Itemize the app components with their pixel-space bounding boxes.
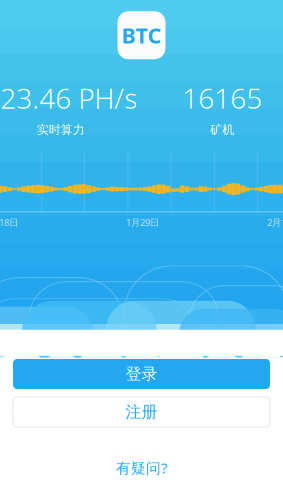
staticText: 2月10日 [267,216,283,229]
staticText: 登录 [125,364,157,384]
staticText: 注册 [125,402,157,422]
staticText: 矿机 [210,122,234,137]
staticText: BTC [121,21,161,49]
staticText: 1月18日 [0,216,18,229]
staticText: 16165 [182,79,262,116]
button[interactable]: 有疑问? [104,452,179,483]
staticText: 有疑问? [116,458,167,477]
staticText: 1月29日 [126,216,159,229]
button[interactable]: 登录 [13,359,270,389]
button[interactable]: 注册 [13,397,270,427]
staticText: 实时算力 [37,122,85,137]
staticText: 123.46 PH/s [0,79,137,116]
